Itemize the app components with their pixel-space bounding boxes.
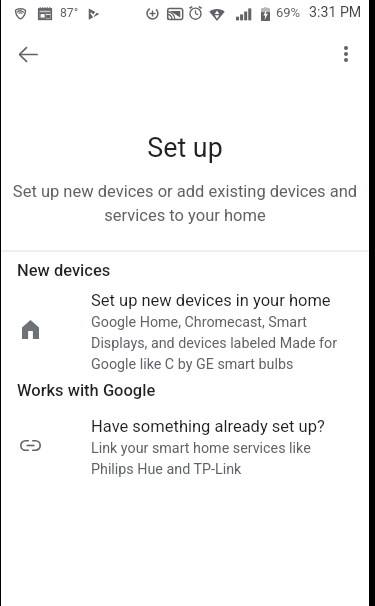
staticText: Set up new devices in your home [91,291,331,310]
button[interactable]: More options [324,32,368,76]
button[interactable]: Back [6,32,50,76]
staticText: Link your smart home services like Phili… [91,440,343,478]
staticText: Google Home, Chromecast, Smart Displays,… [91,314,343,373]
staticText: 87° [60,6,79,20]
staticText: Set up [1,132,369,163]
staticText: 3:31 PM [309,4,362,21]
staticText: 69% [276,5,301,20]
staticText: Set up new devices or add existing devic… [7,182,363,225]
button[interactable]: Have something already set up? [1,417,369,478]
staticText: Have something already set up? [91,417,325,436]
staticText: Works with Google [17,381,369,400]
button[interactable]: Set up new devices in your home [1,291,369,373]
staticText: New devices [17,261,369,280]
